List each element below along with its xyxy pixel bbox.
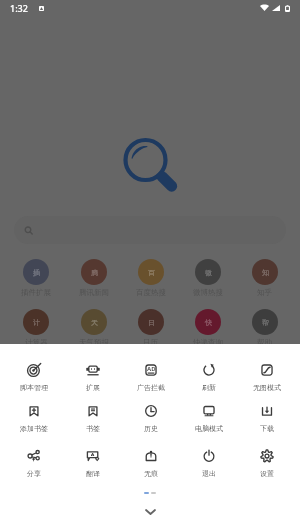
staticText: 设置 [260, 469, 274, 478]
staticText: 无图模式 [253, 383, 281, 392]
staticText: 日 [148, 318, 155, 327]
staticText: 计 [33, 318, 40, 327]
button[interactable]: 分享 [4, 449, 63, 478]
button[interactable]: 刷新 [180, 363, 238, 392]
button[interactable]: 计 [7, 309, 65, 347]
staticText: 电脑模式 [195, 424, 223, 433]
staticText: 知 [262, 268, 269, 277]
staticText: AD [147, 365, 156, 373]
staticText: 快 [205, 318, 212, 327]
button[interactable]: 帮 [236, 309, 293, 347]
button[interactable]: 插 [7, 259, 65, 297]
staticText: 腾讯新闻 [79, 288, 109, 297]
staticText: 微 [205, 268, 212, 277]
staticText: 日历 [143, 338, 158, 347]
button[interactable]: 天 [65, 309, 122, 347]
staticText: 帮 [262, 318, 269, 327]
button[interactable]: 日 [122, 309, 179, 347]
staticText: 知乎 [257, 288, 272, 297]
staticText: 脚本管理 [20, 383, 48, 392]
button[interactable]: 添加书签 [4, 404, 63, 433]
button[interactable]: 历史 [122, 404, 180, 433]
staticText: 扩展 [86, 383, 100, 392]
button[interactable]: 退出 [180, 449, 238, 478]
staticText: 微博热搜 [193, 288, 223, 297]
staticText: 书签 [86, 424, 100, 433]
button[interactable]: 快 [179, 309, 236, 347]
button[interactable]: 设置 [238, 449, 296, 478]
button[interactable]: 腾 [65, 259, 122, 297]
button[interactable]: 书签 [63, 404, 122, 433]
button[interactable]: 无痕 [122, 449, 180, 478]
staticText: 计算器 [25, 338, 48, 347]
staticText: 百度热搜 [136, 288, 166, 297]
staticText: 广告拦截 [137, 383, 165, 392]
button[interactable]: 知 [236, 259, 293, 297]
button[interactable]: 脚本管理 [4, 363, 63, 392]
staticText: 插 [33, 268, 40, 277]
staticText: 天 [91, 318, 98, 327]
button[interactable]: AD [122, 363, 180, 392]
button[interactable]: 下载 [238, 404, 296, 433]
staticText: 无痕 [144, 469, 158, 478]
staticText: 天气预报 [79, 338, 109, 347]
staticText: 1:32 [10, 2, 28, 14]
staticText: 下载 [260, 424, 274, 433]
staticText: 分享 [27, 469, 41, 478]
button[interactable]: 无图模式 [238, 363, 296, 392]
staticText: 退出 [202, 469, 216, 478]
button[interactable]: 百 [122, 259, 179, 297]
staticText: 插件扩展 [21, 288, 51, 297]
staticText: 添加书签 [20, 424, 48, 433]
button[interactable]: 翻译 [63, 449, 122, 478]
staticText: 历史 [144, 424, 158, 433]
staticText: 快递查询 [193, 338, 223, 347]
staticText: 腾 [91, 268, 98, 277]
staticText: 百 [148, 268, 155, 277]
staticText: 翻译 [86, 469, 100, 478]
staticText: 刷新 [202, 383, 216, 392]
staticText: 帮助 [257, 338, 272, 347]
button[interactable]: 电脑模式 [180, 404, 238, 433]
button[interactable]: 扩展 [63, 363, 122, 392]
button[interactable]: Close menu [0, 505, 300, 519]
button[interactable]: 微 [179, 259, 236, 297]
